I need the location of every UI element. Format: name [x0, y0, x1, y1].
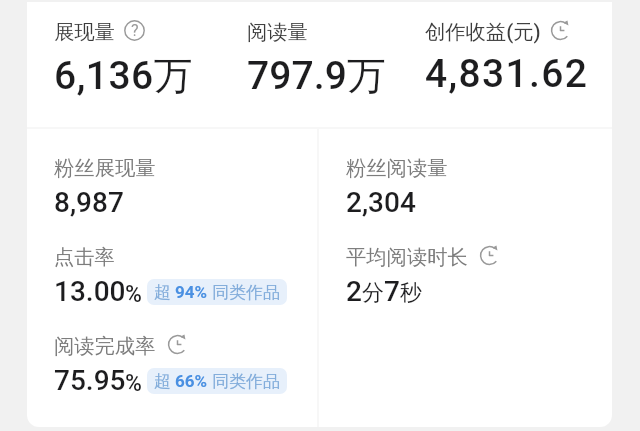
- staticText: 2,304: [346, 186, 416, 219]
- staticText: 粉丝阅读量: [346, 155, 448, 181]
- staticText: 4,831.62: [425, 51, 589, 97]
- button[interactable]: 创作收益(元): [425, 19, 589, 97]
- staticText: ?: [131, 21, 139, 40]
- staticText: 13.00: [54, 275, 126, 308]
- button[interactable]: Help: [124, 20, 145, 41]
- button[interactable]: 点击率: [54, 244, 287, 308]
- button[interactable]: 超: [147, 279, 287, 305]
- staticText: 粉丝展现量: [54, 155, 156, 181]
- staticText: 94%: [175, 282, 208, 302]
- staticText: 66%: [175, 371, 208, 391]
- staticText: 阅读完成率: [54, 333, 156, 359]
- staticText: 展现量: [54, 19, 115, 45]
- button[interactable]: 粉丝阅读量: [346, 155, 448, 219]
- staticText: 797.9万: [247, 51, 387, 100]
- staticText: 平均阅读时长: [346, 244, 468, 270]
- button[interactable]: Updated hourly: [479, 245, 500, 266]
- button[interactable]: 平均阅读时长: [346, 244, 497, 308]
- button[interactable]: 粉丝展现量: [54, 155, 156, 219]
- button[interactable]: Updated hourly: [167, 334, 188, 355]
- button[interactable]: 超: [147, 368, 287, 394]
- staticText: 7: [384, 275, 400, 308]
- staticText: 分: [362, 279, 384, 307]
- staticText: 超: [154, 282, 171, 303]
- button[interactable]: Updated hourly: [550, 20, 571, 41]
- staticText: 点击率: [54, 244, 115, 270]
- staticText: 阅读量: [247, 19, 308, 45]
- staticText: 创作收益(元): [425, 19, 541, 45]
- button[interactable]: 展现量: [54, 19, 194, 100]
- staticText: %: [125, 370, 142, 397]
- staticText: 75.95: [54, 364, 126, 397]
- staticText: 秒: [400, 279, 422, 307]
- staticText: 同类作品: [212, 282, 280, 303]
- staticText: %: [125, 281, 142, 308]
- button[interactable]: 阅读量: [247, 19, 387, 100]
- staticText: 8,987: [54, 186, 124, 219]
- staticText: 超: [154, 371, 171, 392]
- staticText: 6,136万: [54, 51, 194, 100]
- staticText: 2: [346, 275, 362, 308]
- staticText: 同类作品: [212, 371, 280, 392]
- button[interactable]: 阅读完成率: [54, 333, 287, 397]
